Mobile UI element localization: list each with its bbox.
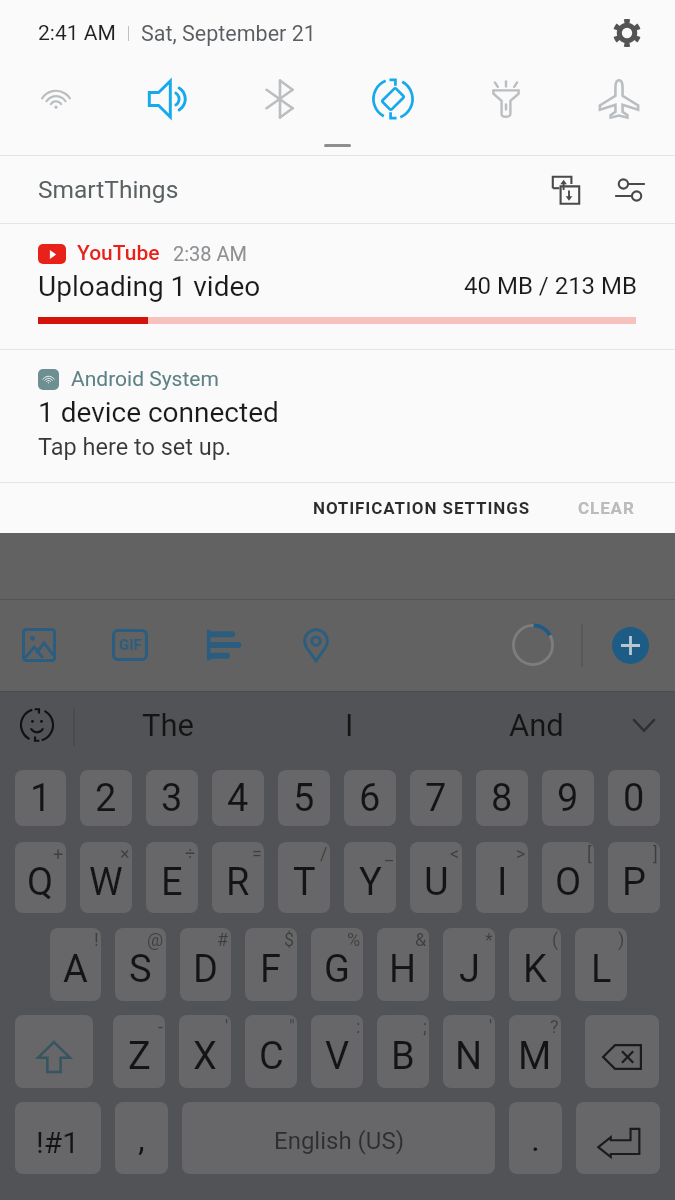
button[interactable]: Airplane mode: [562, 66, 675, 131]
button[interactable]: -: [113, 1015, 165, 1088]
button[interactable]: The: [76, 692, 260, 758]
button[interactable]: ,: [115, 1102, 168, 1174]
button[interactable]: YouTube: [0, 224, 675, 349]
button[interactable]: ": [245, 1015, 297, 1088]
button[interactable]: Backspace: [585, 1015, 659, 1088]
button[interactable]: ×: [80, 842, 132, 913]
button[interactable]: Android System: [0, 350, 675, 482]
staticText: 6: [359, 776, 381, 821]
staticText: NOTIFICATION SETTINGS: [313, 498, 531, 518]
button[interactable]: Emoji: [0, 692, 73, 758]
button[interactable]: 3: [146, 770, 198, 826]
button[interactable]: 9: [542, 770, 594, 826]
button[interactable]: #: [180, 928, 231, 1001]
button[interactable]: *: [443, 928, 495, 1001]
staticText: ": [289, 1016, 295, 1037]
button[interactable]: 4: [212, 770, 264, 826]
staticText: /: [320, 843, 328, 864]
button[interactable]: _: [344, 842, 396, 913]
button[interactable]: Shift: [15, 1015, 93, 1088]
staticText: T: [293, 860, 316, 905]
staticText: *: [485, 929, 493, 950]
button[interactable]: Bluetooth: [224, 66, 336, 131]
staticText: CLEAR: [578, 498, 635, 518]
button[interactable]: ;: [377, 1015, 429, 1088]
button[interactable]: =: [212, 842, 264, 913]
button[interactable]: More suggestions: [613, 692, 675, 758]
staticText: =: [252, 843, 262, 864]
button[interactable]: ': [179, 1015, 231, 1088]
staticText: !#1: [36, 1125, 80, 1160]
button[interactable]: ': [443, 1015, 495, 1088]
button[interactable]: 6: [344, 770, 396, 826]
button[interactable]: (: [509, 928, 561, 1001]
staticText: 2:38 AM: [173, 242, 248, 265]
staticText: 0: [623, 776, 645, 821]
button[interactable]: Insert image: [13, 619, 65, 671]
button[interactable]: Enter: [576, 1102, 660, 1174]
staticText: I: [497, 860, 508, 905]
staticText: >: [516, 843, 526, 864]
staticText: [: [587, 843, 592, 864]
staticText: 5: [293, 776, 315, 821]
staticText: C: [259, 1034, 284, 1079]
button[interactable]: :: [311, 1015, 363, 1088]
button[interactable]: &: [377, 928, 429, 1001]
button[interactable]: @: [115, 928, 166, 1001]
button[interactable]: ]: [608, 842, 660, 913]
button[interactable]: 1: [15, 770, 66, 826]
button[interactable]: 7: [410, 770, 462, 826]
staticText: N: [455, 1034, 483, 1079]
staticText: X: [193, 1034, 217, 1079]
button[interactable]: Auto rotate: [336, 66, 449, 131]
staticText: U: [424, 860, 449, 905]
staticText: Tap here to set up.: [38, 433, 232, 461]
button[interactable]: Quick settings: [607, 167, 653, 213]
staticText: D: [193, 947, 218, 992]
button[interactable]: Settings: [607, 13, 647, 53]
button[interactable]: !#1: [15, 1102, 101, 1174]
button[interactable]: Data transfer: [543, 167, 589, 213]
staticText: !: [94, 929, 99, 950]
button[interactable]: $: [245, 928, 297, 1001]
staticText: <: [450, 843, 460, 864]
staticText: 7: [425, 776, 447, 821]
staticText: M: [518, 1034, 552, 1079]
button[interactable]: 0: [608, 770, 660, 826]
staticText: I: [345, 707, 354, 743]
staticText: 8: [491, 776, 513, 821]
button[interactable]: Sound: [112, 66, 224, 131]
button[interactable]: English (US): [182, 1102, 495, 1174]
button[interactable]: !: [50, 928, 101, 1001]
button[interactable]: NOTIFICATION SETTINGS: [304, 486, 540, 530]
button[interactable]: 8: [476, 770, 528, 826]
button[interactable]: 5: [278, 770, 330, 826]
button[interactable]: Wi-Fi: [0, 66, 112, 131]
button[interactable]: ÷: [146, 842, 198, 913]
button[interactable]: Insert GIF: [104, 619, 156, 671]
button[interactable]: ?: [509, 1015, 561, 1088]
button[interactable]: Share location: [290, 619, 342, 671]
button[interactable]: [: [542, 842, 594, 913]
button[interactable]: I: [257, 692, 441, 758]
staticText: 1 device connected: [38, 396, 279, 429]
button[interactable]: Add attachment: [612, 627, 649, 664]
button[interactable]: CLEAR: [569, 486, 644, 530]
button[interactable]: +: [15, 842, 66, 913]
staticText: The: [142, 707, 195, 743]
staticText: .: [531, 1119, 540, 1159]
button[interactable]: /: [278, 842, 330, 913]
button[interactable]: <: [410, 842, 462, 913]
staticText: Android System: [71, 367, 219, 392]
staticText: :: [356, 1016, 361, 1037]
button[interactable]: .: [509, 1102, 562, 1174]
button[interactable]: ): [575, 928, 627, 1001]
button[interactable]: %: [311, 928, 363, 1001]
button[interactable]: Text formatting: [197, 619, 249, 671]
staticText: A: [63, 947, 88, 992]
button[interactable]: 2: [80, 770, 132, 826]
button[interactable]: And: [444, 692, 628, 758]
staticText: P: [622, 860, 646, 905]
button[interactable]: Flashlight: [449, 66, 562, 131]
button[interactable]: >: [476, 842, 528, 913]
